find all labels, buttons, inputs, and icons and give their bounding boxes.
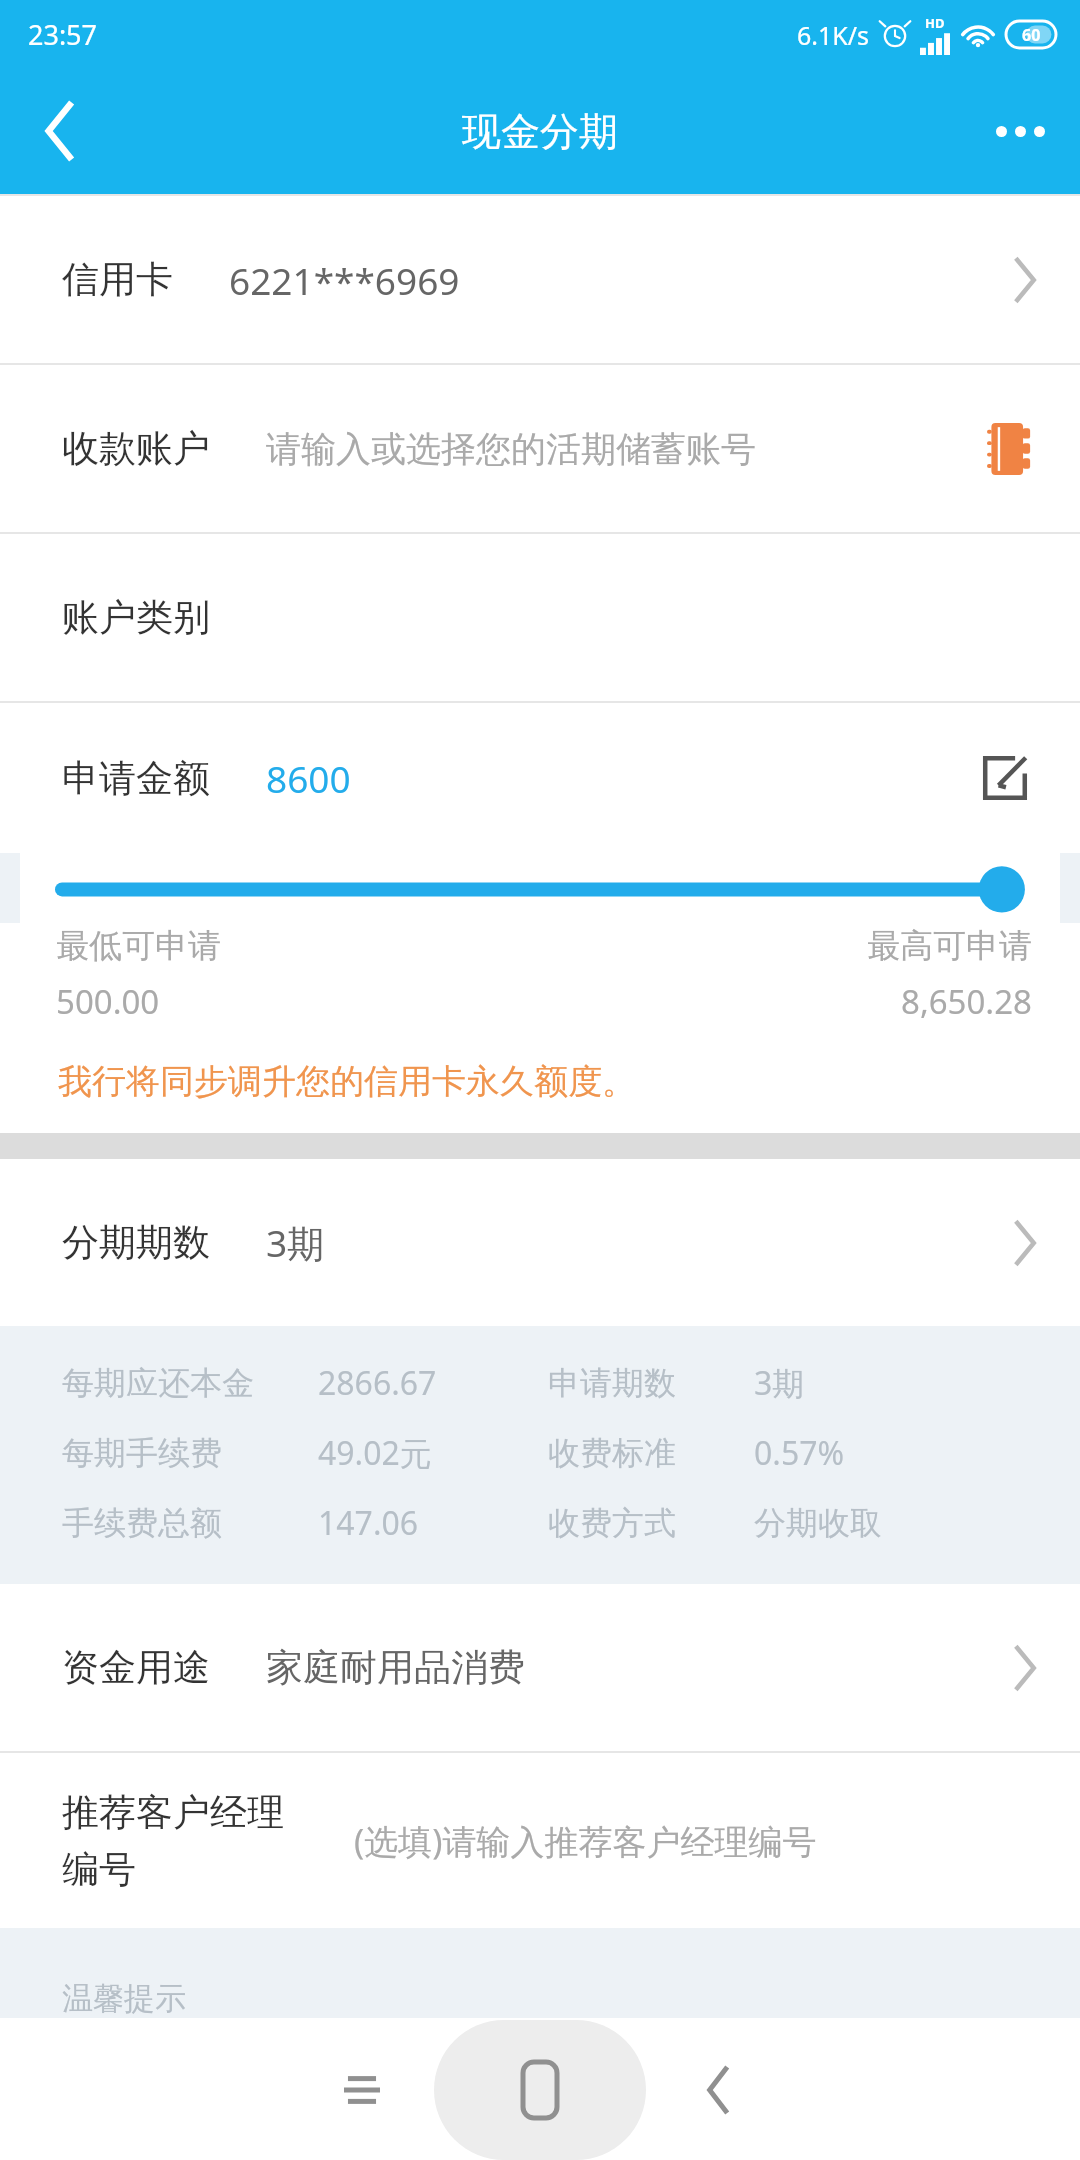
staticText: 60 (1022, 24, 1041, 46)
button[interactable]: Amount slider (0, 853, 1080, 923)
staticText: 0.57% (754, 1431, 845, 1475)
staticText: 6.1K/s (797, 18, 870, 52)
button[interactable]: Recents (302, 2030, 422, 2150)
button[interactable]: Back (658, 2030, 778, 2150)
staticText: 8600 (266, 753, 351, 803)
staticText: 账户类别 (62, 594, 210, 641)
button[interactable]: 信用卡 (0, 196, 1080, 363)
staticText: 最低可申请 (56, 925, 221, 967)
button[interactable]: More options (960, 68, 1080, 194)
button[interactable]: 资金用途 (0, 1584, 1080, 1751)
staticText: 每期应还本金 (62, 1363, 254, 1403)
staticText: 49.02元 (318, 1431, 432, 1475)
staticText: 收款账户 (62, 425, 210, 472)
staticText: 资金用途 (62, 1644, 210, 1691)
button[interactable]: 收款账户 (0, 365, 1080, 532)
button[interactable]: 账户类别 (0, 534, 1080, 701)
staticText: 收费标准 (548, 1433, 676, 1473)
staticText: 8,650.28 (901, 979, 1032, 1024)
button[interactable]: 推荐客户经理 (0, 1753, 1080, 1928)
staticText: 我行将同步调升您的信用卡永久额度。 (58, 1060, 636, 1103)
button[interactable]: Choose account (978, 418, 1040, 480)
button[interactable]: Back (0, 68, 120, 194)
staticText: 请输入或选择您的活期储蓄账号 (266, 427, 756, 471)
staticText: 收费方式 (548, 1503, 676, 1543)
staticText: 申请期数 (548, 1363, 676, 1403)
staticText: 手续费总额 (62, 1503, 222, 1543)
staticText: 分期收取 (754, 1503, 882, 1543)
staticText: 3期 (266, 1217, 325, 1268)
staticText: 6221***6969 (229, 255, 460, 305)
staticText: 温馨提示 (62, 1979, 186, 2018)
staticText: 500.00 (56, 979, 160, 1024)
staticText: 每期手续费 (62, 1433, 222, 1473)
staticText: 147.06 (318, 1501, 419, 1545)
staticText: 最高可申请 (867, 925, 1032, 967)
staticText: 3期 (754, 1361, 805, 1405)
staticText: 推荐客户经理 (62, 1789, 284, 1836)
button[interactable]: 分期期数 (0, 1159, 1080, 1326)
staticText: 23:57 (28, 16, 98, 53)
staticText: (选填)请输入推荐客户经理编号 (354, 1818, 817, 1864)
staticText: 分期期数 (62, 1219, 210, 1266)
button[interactable]: 申请金额 (0, 703, 1080, 853)
staticText: HD (925, 14, 945, 32)
button[interactable]: Home (470, 2020, 610, 2160)
staticText: 编号 (62, 1846, 136, 1893)
staticText: 家庭耐用品消费 (266, 1644, 525, 1691)
staticText: 2866.67 (318, 1361, 437, 1405)
button[interactable]: Edit amount (974, 747, 1036, 809)
staticText: 信用卡 (62, 256, 173, 303)
staticText: 申请金额 (62, 755, 210, 802)
staticText: 现金分期 (462, 107, 618, 156)
